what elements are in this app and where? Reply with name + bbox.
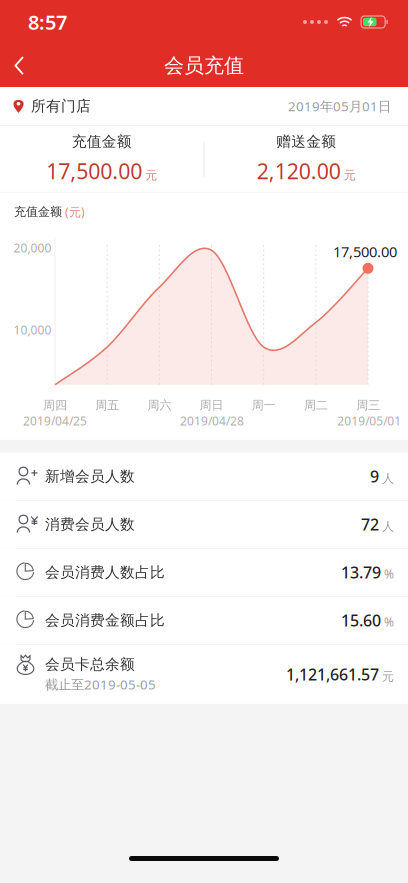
staticText: 元 [145, 168, 157, 182]
staticText: 周一 [252, 398, 276, 412]
staticText: 10,000 [13, 322, 51, 338]
staticText: 13.79 [341, 562, 381, 583]
staticText: 周六 [147, 398, 171, 412]
staticText: 2019/04/25 [23, 413, 87, 429]
staticText: 截止至2019-05-05 [45, 675, 156, 693]
staticText: 8:57 [28, 9, 67, 35]
staticText: 赠送金额 [276, 133, 336, 151]
staticText: 消费会员人数 [45, 515, 135, 533]
staticText: 周四 [43, 398, 67, 412]
staticText: 人 [382, 471, 394, 486]
staticText: 新增会员人数 [45, 467, 135, 485]
staticText: 所有门店 [31, 97, 91, 115]
staticText: 人 [382, 519, 394, 534]
staticText: % [384, 614, 394, 630]
button[interactable]: 会员消费金额占比 [0, 597, 408, 645]
button[interactable]: 会员消费人数占比 [0, 549, 408, 597]
staticText: 2019/04/28 [180, 413, 244, 429]
staticText: 充值金额 [72, 133, 132, 151]
staticText: 9 [370, 466, 379, 487]
staticText: 充值金额 [14, 204, 62, 219]
staticText: 周三 [356, 398, 380, 412]
button[interactable]: 会员卡总余额 [0, 645, 408, 704]
staticText: 1,121,661.57 [286, 664, 379, 685]
staticText: 2,120.00 [257, 157, 341, 185]
staticText: % [384, 566, 394, 582]
staticText: 周五 [95, 398, 119, 412]
staticText: 会员消费人数占比 [45, 563, 165, 581]
staticText: 会员充值 [164, 53, 244, 78]
staticText: 元 [344, 168, 356, 182]
staticText: 17,500.00 [333, 242, 397, 261]
staticText: 17,500.00 [46, 157, 142, 185]
staticText: 15.60 [341, 610, 381, 631]
staticText: (元) [65, 204, 85, 220]
staticText: 72 [361, 514, 379, 535]
staticText: 周日 [200, 398, 224, 412]
staticText: 2019年05月01日 [288, 97, 391, 115]
staticText: 元 [382, 669, 394, 684]
button[interactable]: 消费会员人数 [0, 501, 408, 549]
button[interactable]: 新增会员人数 [0, 453, 408, 501]
button[interactable]: Back [0, 45, 38, 86]
staticText: 会员消费金额占比 [45, 611, 165, 629]
staticText: 会员卡总余额 [45, 655, 135, 673]
staticText: 20,000 [13, 240, 51, 256]
staticText: 周二 [304, 398, 328, 412]
button[interactable]: 所有门店 [0, 89, 91, 123]
staticText: 2019/05/01 [337, 413, 401, 429]
